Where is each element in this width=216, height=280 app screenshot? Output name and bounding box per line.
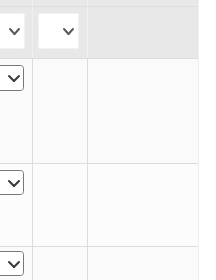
button[interactable]: Select option <box>38 13 79 49</box>
button[interactable]: Select option <box>0 65 24 91</box>
button[interactable]: Select option <box>0 170 24 195</box>
button[interactable]: Select option <box>0 13 25 49</box>
button[interactable]: Select option <box>0 251 24 276</box>
